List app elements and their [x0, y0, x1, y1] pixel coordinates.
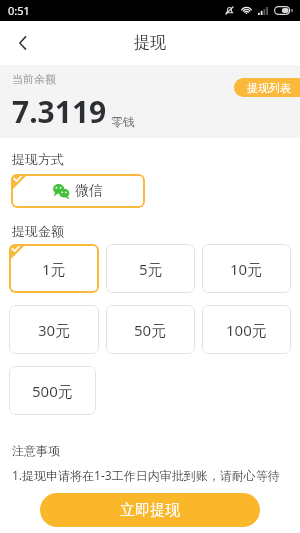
button[interactable]: 30元 [9, 305, 99, 354]
staticText: 5元 [139, 259, 163, 279]
staticText: 立即提现 [120, 501, 180, 520]
staticText: 30元 [38, 320, 71, 340]
button[interactable]: 提现列表 [234, 78, 300, 97]
button[interactable]: 100元 [202, 305, 291, 354]
staticText: 注意事项 [12, 443, 60, 458]
staticText: 1元 [42, 259, 66, 279]
staticText: 提现方式 [12, 151, 64, 167]
staticText: 7.3119 [12, 91, 107, 132]
button[interactable]: 5元 [106, 244, 195, 293]
staticText: 当前余额 [12, 72, 56, 86]
staticText: 提现列表 [247, 81, 291, 95]
staticText: 提现金额 [12, 223, 64, 239]
button[interactable]: 1元 [9, 244, 99, 293]
button[interactable]: 50元 [106, 305, 195, 354]
staticText: 微信 [75, 182, 103, 200]
button[interactable]: Back [0, 21, 46, 65]
staticText: 10元 [230, 259, 263, 279]
button[interactable]: 立即提现 [40, 493, 260, 527]
button[interactable]: 微信 [11, 174, 145, 208]
staticText: 0:51 [8, 3, 30, 18]
staticText: 50元 [134, 320, 167, 340]
button[interactable]: 500元 [9, 366, 96, 415]
staticText: 500元 [32, 381, 73, 401]
staticText: 提现 [134, 33, 166, 53]
staticText: 100元 [226, 320, 267, 340]
staticText: 零钱 [111, 114, 135, 129]
staticText: 1.提现申请将在1-3工作日内审批到账，请耐心等待 [12, 467, 280, 483]
button[interactable]: 10元 [202, 244, 291, 293]
